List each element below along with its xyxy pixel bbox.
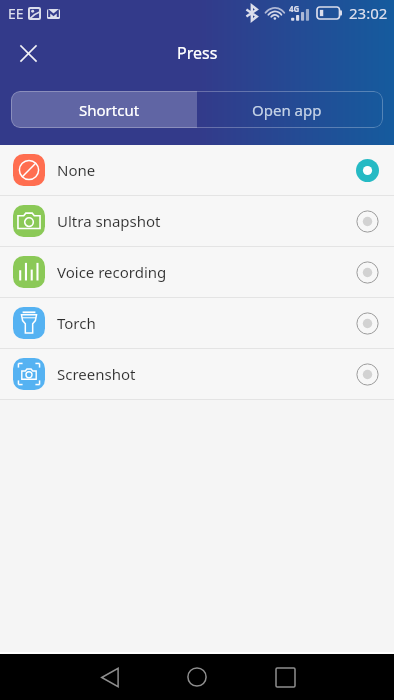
staticText: Ultra snapshot	[57, 211, 161, 231]
staticText: EE	[8, 4, 24, 23]
staticText: Press	[177, 42, 218, 64]
button[interactable]: Recent apps	[254, 654, 316, 700]
button[interactable]: Select Ultra snapshot	[352, 206, 382, 236]
button[interactable]: Back	[78, 654, 142, 700]
staticText: Torch	[57, 313, 96, 333]
button[interactable]: Screenshot	[0, 349, 394, 399]
button[interactable]: Shortcut	[11, 91, 197, 128]
button[interactable]: Select Torch	[352, 308, 382, 338]
button[interactable]: None	[0, 145, 394, 195]
staticText: Open app	[252, 100, 322, 120]
button[interactable]: Open app	[197, 91, 383, 128]
staticText: None	[57, 160, 96, 180]
button[interactable]: Close	[11, 36, 45, 70]
button[interactable]: Select Screenshot	[352, 359, 382, 389]
button[interactable]: Select None	[352, 155, 382, 185]
staticText: 4G	[289, 3, 300, 14]
button[interactable]: Ultra snapshot	[0, 196, 394, 246]
staticText: Screenshot	[57, 364, 136, 384]
button[interactable]: Voice recording	[0, 247, 394, 297]
staticText: 23:02	[349, 3, 388, 23]
button[interactable]: Torch	[0, 298, 394, 348]
button[interactable]: Home	[166, 654, 228, 700]
staticText: Shortcut	[79, 100, 140, 120]
staticText: Voice recording	[57, 262, 167, 282]
button[interactable]: Select Voice recording	[352, 257, 382, 287]
